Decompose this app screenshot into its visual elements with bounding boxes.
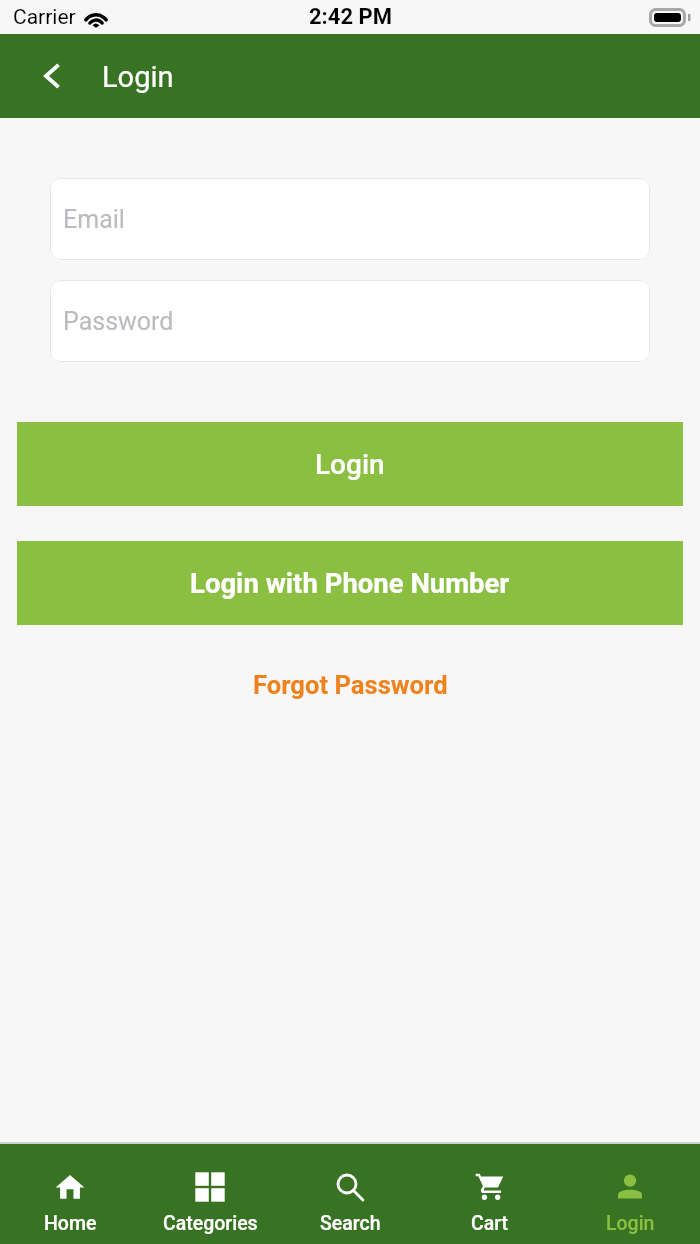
staticText: Login xyxy=(606,1212,655,1235)
staticText: 2:42 PM xyxy=(309,4,392,30)
button[interactable]: Login xyxy=(17,422,683,506)
staticText: Login with Phone Number xyxy=(190,567,510,599)
button[interactable]: Search xyxy=(280,1144,420,1244)
button[interactable]: Login xyxy=(560,1144,700,1244)
button[interactable]: Cart xyxy=(420,1144,560,1244)
staticText: Email xyxy=(63,205,125,234)
button[interactable]: Forgot Password xyxy=(0,661,700,709)
staticText: Login xyxy=(315,448,385,481)
staticText: Carrier xyxy=(13,5,76,30)
button[interactable]: Back xyxy=(28,52,76,100)
button[interactable]: Login with Phone Number xyxy=(17,541,683,625)
staticText: Password xyxy=(63,307,174,336)
button[interactable]: Home xyxy=(0,1144,140,1244)
staticText: Categories xyxy=(163,1212,258,1235)
staticText: Search xyxy=(320,1212,381,1235)
staticText: Home xyxy=(44,1212,97,1235)
button[interactable]: Categories xyxy=(140,1144,280,1244)
staticText: Forgot Password xyxy=(253,670,448,700)
staticText: Login xyxy=(102,60,174,94)
button[interactable]: Password xyxy=(50,280,650,362)
button[interactable]: Email xyxy=(50,178,650,260)
staticText: Cart xyxy=(471,1212,509,1235)
